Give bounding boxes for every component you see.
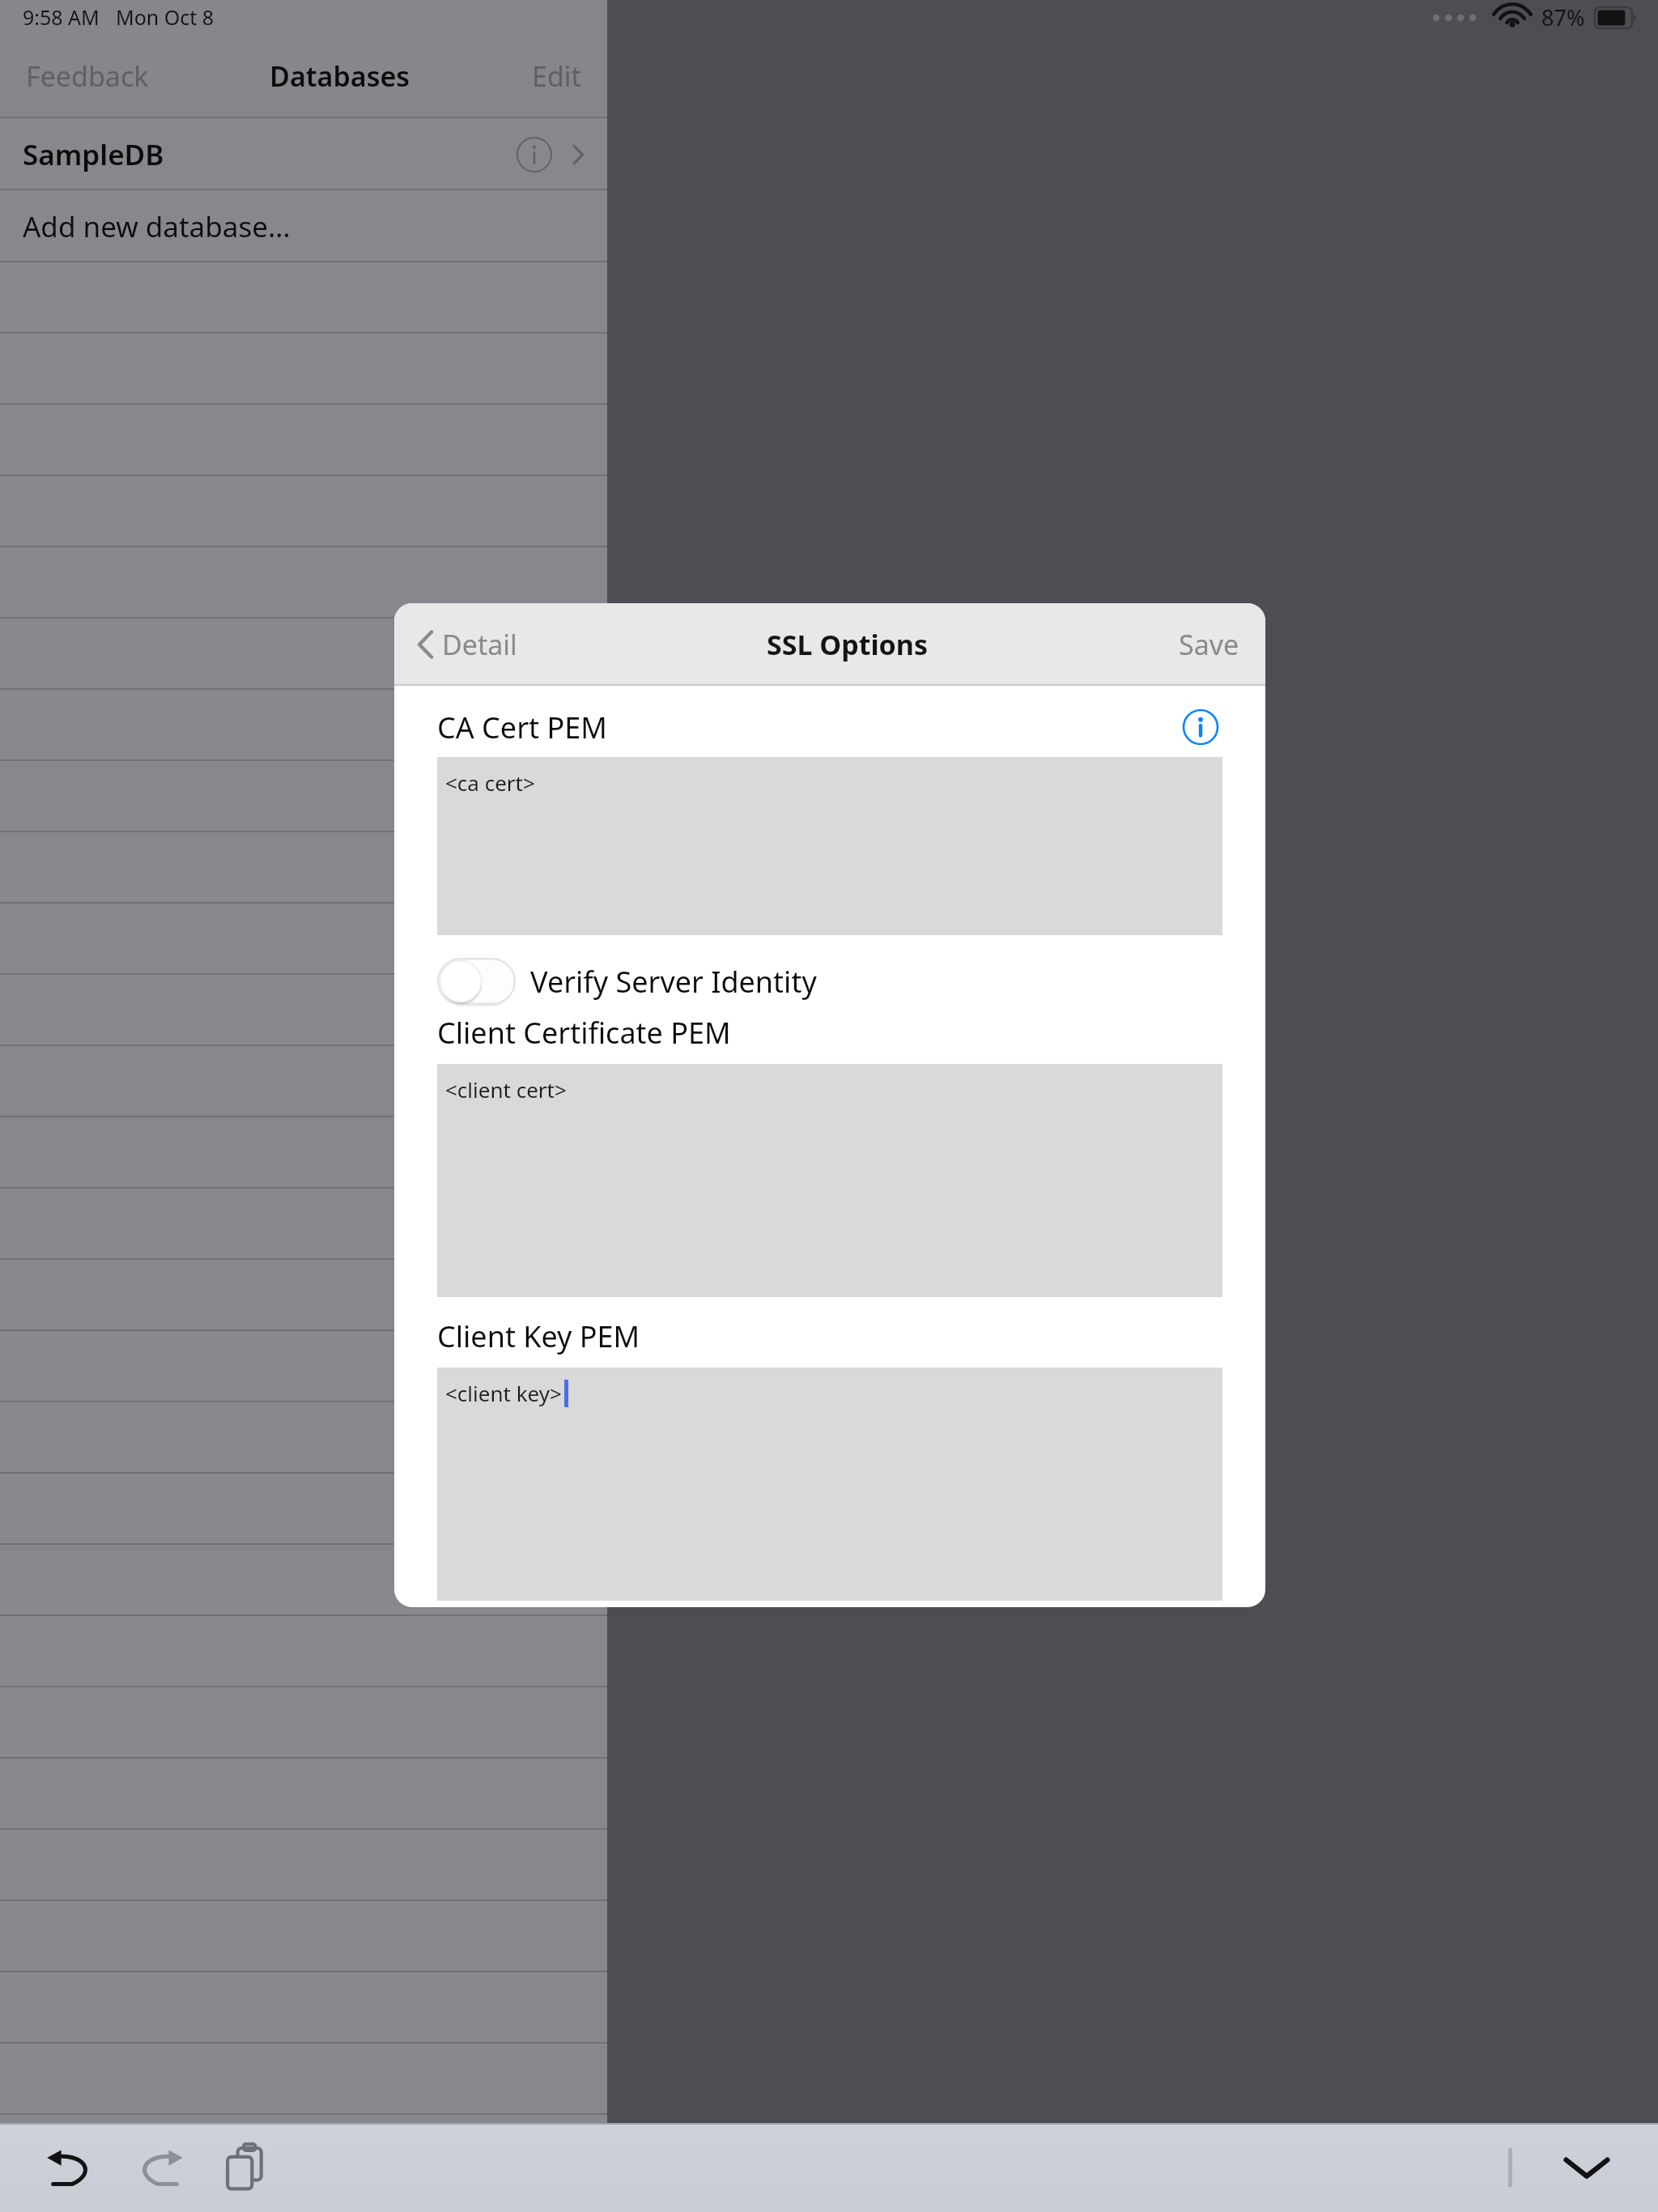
staticText: Client Certificate PEM	[437, 1013, 731, 1053]
staticText: Verify Server Identity	[530, 962, 817, 1002]
button[interactable]: <client cert>	[437, 1064, 1222, 1297]
staticText: <ca cert>	[445, 768, 535, 797]
button[interactable]: Add new database…	[0, 190, 607, 262]
staticText: <client key>	[445, 1379, 562, 1407]
button[interactable]: Edit	[529, 49, 585, 103]
staticText: Feedback	[26, 57, 149, 95]
staticText: Mon Oct 8	[116, 3, 215, 31]
staticText: Databases	[270, 57, 410, 95]
button[interactable]: Database info	[515, 135, 554, 174]
staticText: Detail	[442, 626, 517, 663]
button[interactable]: Verify Server Identity	[437, 958, 516, 1005]
button[interactable]: <ca cert>	[437, 757, 1222, 935]
staticText: 9:58 AM	[23, 3, 100, 31]
staticText: 87%	[1541, 2, 1585, 32]
staticText: <client cert>	[445, 1075, 567, 1104]
button[interactable]: SampleDB	[0, 118, 607, 190]
button[interactable]: About CA Cert PEM	[1179, 705, 1222, 749]
button[interactable]: Paste	[207, 2129, 285, 2206]
button[interactable]: Redo	[120, 2129, 198, 2206]
button[interactable]: Hide keyboard	[1548, 2129, 1626, 2206]
button[interactable]: Undo	[32, 2129, 110, 2206]
button[interactable]: Detail	[412, 616, 522, 673]
staticText: Save	[1179, 626, 1239, 663]
staticText: Add new database…	[23, 207, 291, 246]
staticText: SSL Options	[767, 626, 929, 663]
staticText: Edit	[532, 57, 581, 95]
button[interactable]: <client key>	[437, 1368, 1222, 1601]
button[interactable]: Feedback	[23, 49, 152, 103]
staticText: Client Key PEM	[437, 1317, 640, 1356]
button[interactable]: Save	[1174, 616, 1244, 673]
staticText: CA Cert PEM	[437, 708, 607, 747]
staticText: SampleDB	[23, 135, 164, 174]
